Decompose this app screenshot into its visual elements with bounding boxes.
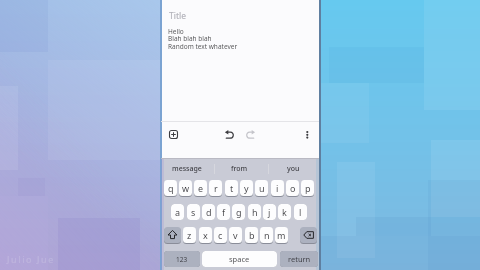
button[interactable]: k (278, 204, 291, 220)
button[interactable]: return (280, 251, 318, 267)
button[interactable]: v (229, 227, 242, 243)
button[interactable]: 123 (164, 251, 200, 267)
staticText: you (287, 164, 300, 174)
staticText: from (231, 164, 248, 174)
button[interactable]: space (202, 251, 277, 267)
staticText: Blah blah blah (168, 34, 212, 43)
staticText: return (288, 254, 311, 264)
staticText: message (172, 164, 202, 174)
staticText: Random text whatever (168, 42, 238, 51)
staticText: k (282, 206, 287, 218)
staticText: a (175, 206, 181, 218)
button[interactable] (164, 227, 181, 243)
button[interactable] (300, 227, 317, 243)
staticText: h (252, 206, 258, 218)
staticText: Hello (168, 27, 184, 36)
button[interactable]: message (166, 160, 208, 178)
button[interactable]: u (255, 180, 268, 196)
staticText: c (218, 229, 223, 241)
button[interactable]: from (221, 160, 257, 178)
button[interactable]: y (240, 180, 253, 196)
staticText: Julio Jue (7, 253, 55, 265)
button[interactable] (243, 127, 258, 142)
button[interactable]: p (301, 180, 314, 196)
staticText: y (244, 182, 249, 194)
staticText: space (229, 254, 250, 264)
button[interactable]: t (225, 180, 238, 196)
staticText: u (259, 182, 265, 194)
staticText: w (182, 182, 190, 194)
button[interactable]: Title (169, 10, 186, 22)
button[interactable]: c (214, 227, 227, 243)
staticText: l (299, 206, 302, 218)
staticText: n (264, 229, 270, 241)
staticText: i (276, 182, 279, 194)
button[interactable]: w (179, 180, 192, 196)
staticText: v (233, 229, 238, 241)
staticText: t (230, 182, 234, 194)
button[interactable]: x (199, 227, 212, 243)
button[interactable]: n (260, 227, 273, 243)
button[interactable] (300, 127, 315, 142)
staticText: o (290, 182, 296, 194)
staticText: x (203, 229, 208, 241)
button[interactable] (222, 127, 237, 142)
button[interactable]: j (263, 204, 276, 220)
staticText: s (191, 206, 196, 218)
button[interactable]: l (294, 204, 307, 220)
staticText: p (305, 182, 311, 194)
staticText: b (249, 229, 255, 241)
button[interactable]: d (202, 204, 215, 220)
staticText: e (198, 182, 204, 194)
button[interactable]: s (187, 204, 200, 220)
button[interactable]: h (248, 204, 261, 220)
staticText: q (168, 182, 174, 194)
button[interactable]: you (276, 160, 310, 178)
button[interactable]: f (217, 204, 230, 220)
button[interactable]: a (171, 204, 184, 220)
staticText: d (206, 206, 212, 218)
staticText: j (268, 206, 271, 218)
button[interactable]: g (232, 204, 245, 220)
staticText: g (236, 206, 242, 218)
button[interactable] (166, 127, 181, 142)
staticText: 123 (176, 255, 188, 264)
staticText: f (222, 206, 226, 218)
button[interactable]: m (275, 227, 288, 243)
button[interactable]: q (164, 180, 177, 196)
button[interactable]: b (245, 227, 258, 243)
staticText: r (214, 182, 218, 194)
button[interactable]: o (286, 180, 299, 196)
button[interactable]: r (209, 180, 222, 196)
button[interactable]: i (271, 180, 284, 196)
button[interactable]: e (194, 180, 207, 196)
staticText: z (187, 229, 192, 241)
button[interactable]: z (183, 227, 196, 243)
staticText: m (277, 229, 286, 241)
